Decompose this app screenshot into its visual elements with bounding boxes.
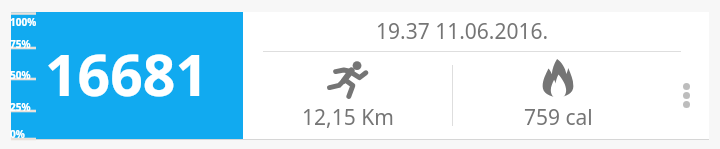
button[interactable]: 759 cal — [453, 52, 663, 139]
staticText: 12,15 Km — [302, 103, 394, 132]
staticText: 25% — [10, 100, 31, 114]
button[interactable]: 16681 — [11, 12, 243, 139]
staticText: 75% — [10, 37, 31, 51]
button[interactable]: 12,15 Km — [243, 52, 452, 139]
staticText: 100% — [10, 15, 37, 29]
staticText: 50% — [10, 68, 31, 82]
staticText: 0% — [10, 127, 25, 141]
staticText: 16681 — [45, 35, 209, 113]
staticText: 759 cal — [524, 103, 593, 132]
button[interactable]: More options — [663, 52, 709, 139]
staticText: 19.37 11.06.2016. — [376, 17, 549, 46]
